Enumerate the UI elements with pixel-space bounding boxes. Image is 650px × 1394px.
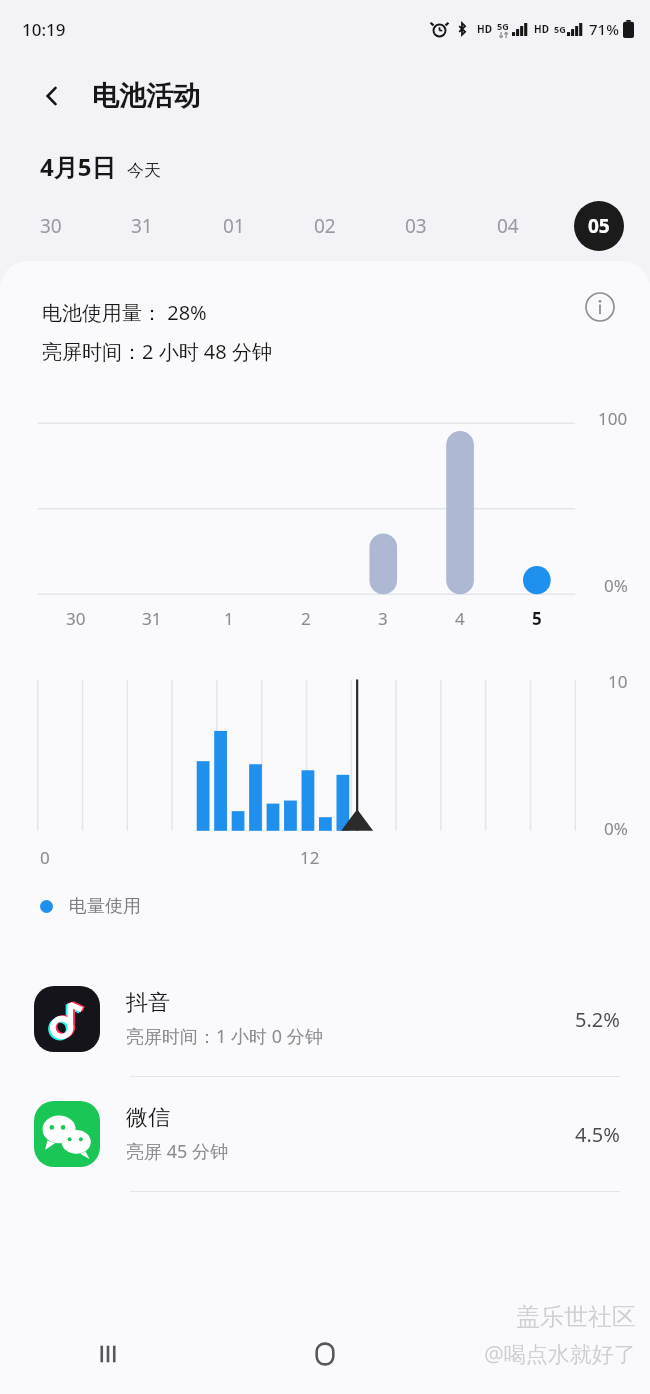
button[interactable]: Information	[578, 285, 622, 329]
staticText: 10:19	[22, 18, 66, 41]
staticText: 03	[405, 213, 427, 239]
staticText: 4	[455, 607, 465, 630]
button[interactable]: 05	[574, 201, 624, 251]
staticText: 5G	[554, 23, 566, 35]
staticText: 抖音	[126, 989, 170, 1017]
staticText: 1	[224, 607, 234, 630]
staticText: 4月5日	[40, 150, 116, 183]
staticText: 0%	[604, 817, 628, 840]
staticText: 电池使用量： 28%	[42, 299, 207, 326]
staticText: 0	[40, 846, 50, 869]
staticText: 71%	[589, 19, 619, 39]
staticText: HD	[477, 22, 492, 36]
staticText: 31	[142, 607, 162, 630]
staticText: 0%	[604, 574, 628, 597]
button[interactable]: 抖音	[0, 962, 650, 1077]
button[interactable]: Home	[216, 1314, 433, 1394]
staticText: 今天	[127, 160, 161, 181]
staticText: 微信	[126, 1104, 170, 1132]
staticText: 电池活动	[92, 79, 200, 113]
button[interactable]: Recents	[0, 1314, 216, 1394]
staticText: 01	[223, 213, 245, 239]
staticText: 亮屏时间：2 小时 48 分钟	[42, 338, 272, 365]
staticText: 5.2%	[575, 1006, 620, 1033]
staticText: 亮屏时间：1 小时 0 分钟	[126, 1024, 323, 1049]
staticText: @喝点水就好了	[484, 1338, 636, 1368]
staticText: 30	[66, 607, 86, 630]
staticText: 盖乐世社区	[516, 1302, 636, 1332]
staticText: 亮屏 45 分钟	[126, 1139, 228, 1164]
button[interactable]: 微信	[0, 1077, 650, 1192]
staticText: HD	[534, 22, 549, 36]
staticText: 12	[300, 846, 320, 869]
staticText: 04	[497, 213, 519, 239]
button[interactable]: Back	[433, 1314, 650, 1394]
staticText: 3	[378, 607, 388, 630]
staticText: 100	[598, 407, 628, 430]
staticText: 2	[301, 607, 311, 630]
staticText: 10	[608, 670, 628, 693]
button[interactable]: 30	[26, 201, 76, 251]
button[interactable]: 01	[209, 201, 259, 251]
staticText: 30	[40, 213, 62, 239]
staticText: 电量使用	[69, 895, 141, 918]
button[interactable]: 03	[391, 201, 441, 251]
button[interactable]: 02	[300, 201, 350, 251]
button[interactable]: Back	[30, 74, 74, 118]
staticText: 5G	[497, 20, 509, 32]
button[interactable]: 31	[117, 201, 167, 251]
staticText: 31	[131, 213, 153, 239]
button[interactable]: 04	[483, 201, 533, 251]
staticText: 05	[588, 213, 610, 239]
staticText: 5	[532, 607, 542, 630]
staticText: 02	[314, 213, 336, 239]
staticText: 4.5%	[575, 1121, 620, 1148]
